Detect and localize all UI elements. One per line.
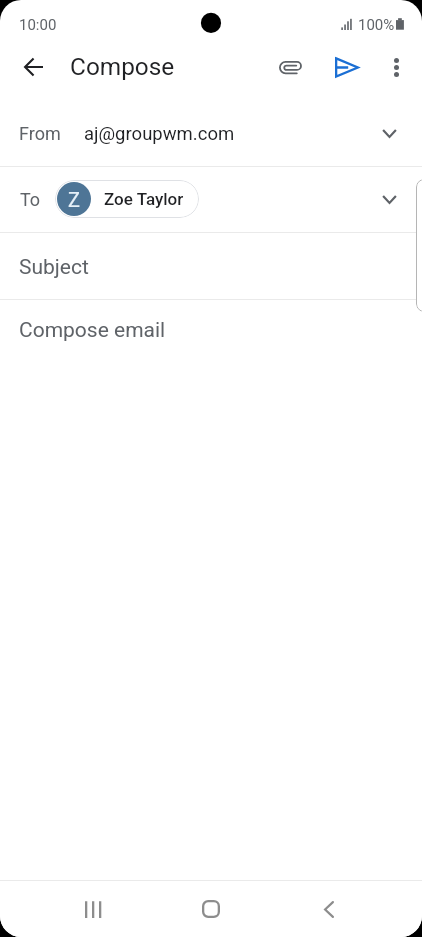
staticText: 100% xyxy=(358,16,395,34)
button[interactable]: Compose email xyxy=(0,300,422,880)
button[interactable]: Navigate up xyxy=(9,43,57,91)
button[interactable]: More options xyxy=(372,43,420,91)
staticText: Compose email xyxy=(19,318,166,343)
staticText: Compose xyxy=(70,52,175,81)
staticText: To xyxy=(20,189,41,210)
button[interactable]: Recent apps xyxy=(69,885,117,933)
staticText: Z xyxy=(68,188,80,211)
button[interactable]: Home xyxy=(187,885,235,933)
staticText: 10:00 xyxy=(19,16,57,34)
staticText: Zoe Taylor xyxy=(104,189,184,209)
button[interactable]: Back xyxy=(305,885,353,933)
button[interactable]: Send xyxy=(323,43,371,91)
staticText: From xyxy=(19,123,61,144)
staticText: aj@groupwm.com xyxy=(84,123,235,145)
staticText: Subject xyxy=(19,255,89,280)
button[interactable]: Attach file xyxy=(267,43,315,91)
button[interactable]: Subject xyxy=(0,233,422,299)
button[interactable]: From xyxy=(0,96,422,166)
button[interactable]: Z xyxy=(55,180,199,218)
button[interactable]: To xyxy=(0,167,422,232)
